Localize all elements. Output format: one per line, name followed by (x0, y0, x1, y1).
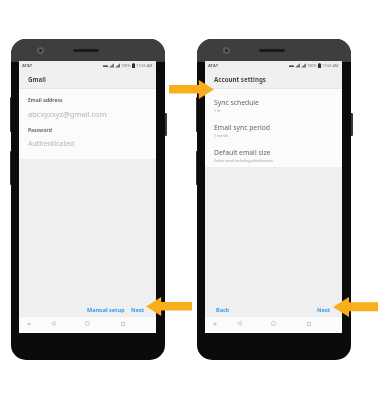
button[interactable]: Home (83, 319, 92, 328)
button[interactable]: Next (128, 303, 156, 316)
staticText: Next (317, 306, 331, 313)
staticText: Entire email including attachments (214, 158, 273, 163)
staticText: 100% (307, 63, 317, 68)
staticText: AT&T (208, 63, 219, 69)
staticText: 1 month (214, 133, 229, 138)
staticText: abcxyzxyz@gmail.com (28, 109, 107, 119)
button[interactable]: Recents (118, 319, 127, 328)
staticText: 11:56 AM (136, 63, 153, 68)
staticText: Next (131, 306, 145, 313)
staticText: 100% (121, 63, 131, 68)
staticText: AT&T (22, 63, 33, 69)
button[interactable]: Manual setup (84, 303, 128, 316)
staticText: Manual setup (87, 306, 125, 313)
staticText: Back (216, 306, 230, 313)
button[interactable]: Sync schedule (205, 95, 342, 120)
staticText: Password (28, 127, 52, 134)
button[interactable]: Recents (304, 319, 313, 328)
staticText: Sync schedule (214, 98, 259, 107)
staticText: Account settings (214, 75, 266, 83)
button[interactable]: Back (234, 319, 243, 328)
button[interactable]: Next (314, 303, 342, 316)
staticText: Email sync period (214, 123, 271, 132)
staticText: Default email size (214, 148, 271, 157)
button[interactable]: Email sync period (205, 120, 342, 145)
staticText: Email address (28, 97, 63, 104)
staticText: 1 hr (214, 108, 221, 113)
button[interactable]: Back (205, 303, 233, 316)
button[interactable]: Home (269, 319, 278, 328)
staticText: Gmail (28, 75, 46, 83)
button[interactable]: Back (48, 319, 57, 328)
button[interactable]: Keyboard (210, 319, 219, 328)
button[interactable]: Default email size (205, 145, 342, 167)
staticText: Authenticated (28, 139, 75, 149)
button[interactable]: Keyboard (24, 319, 33, 328)
staticText: 11:56 AM (322, 63, 339, 68)
